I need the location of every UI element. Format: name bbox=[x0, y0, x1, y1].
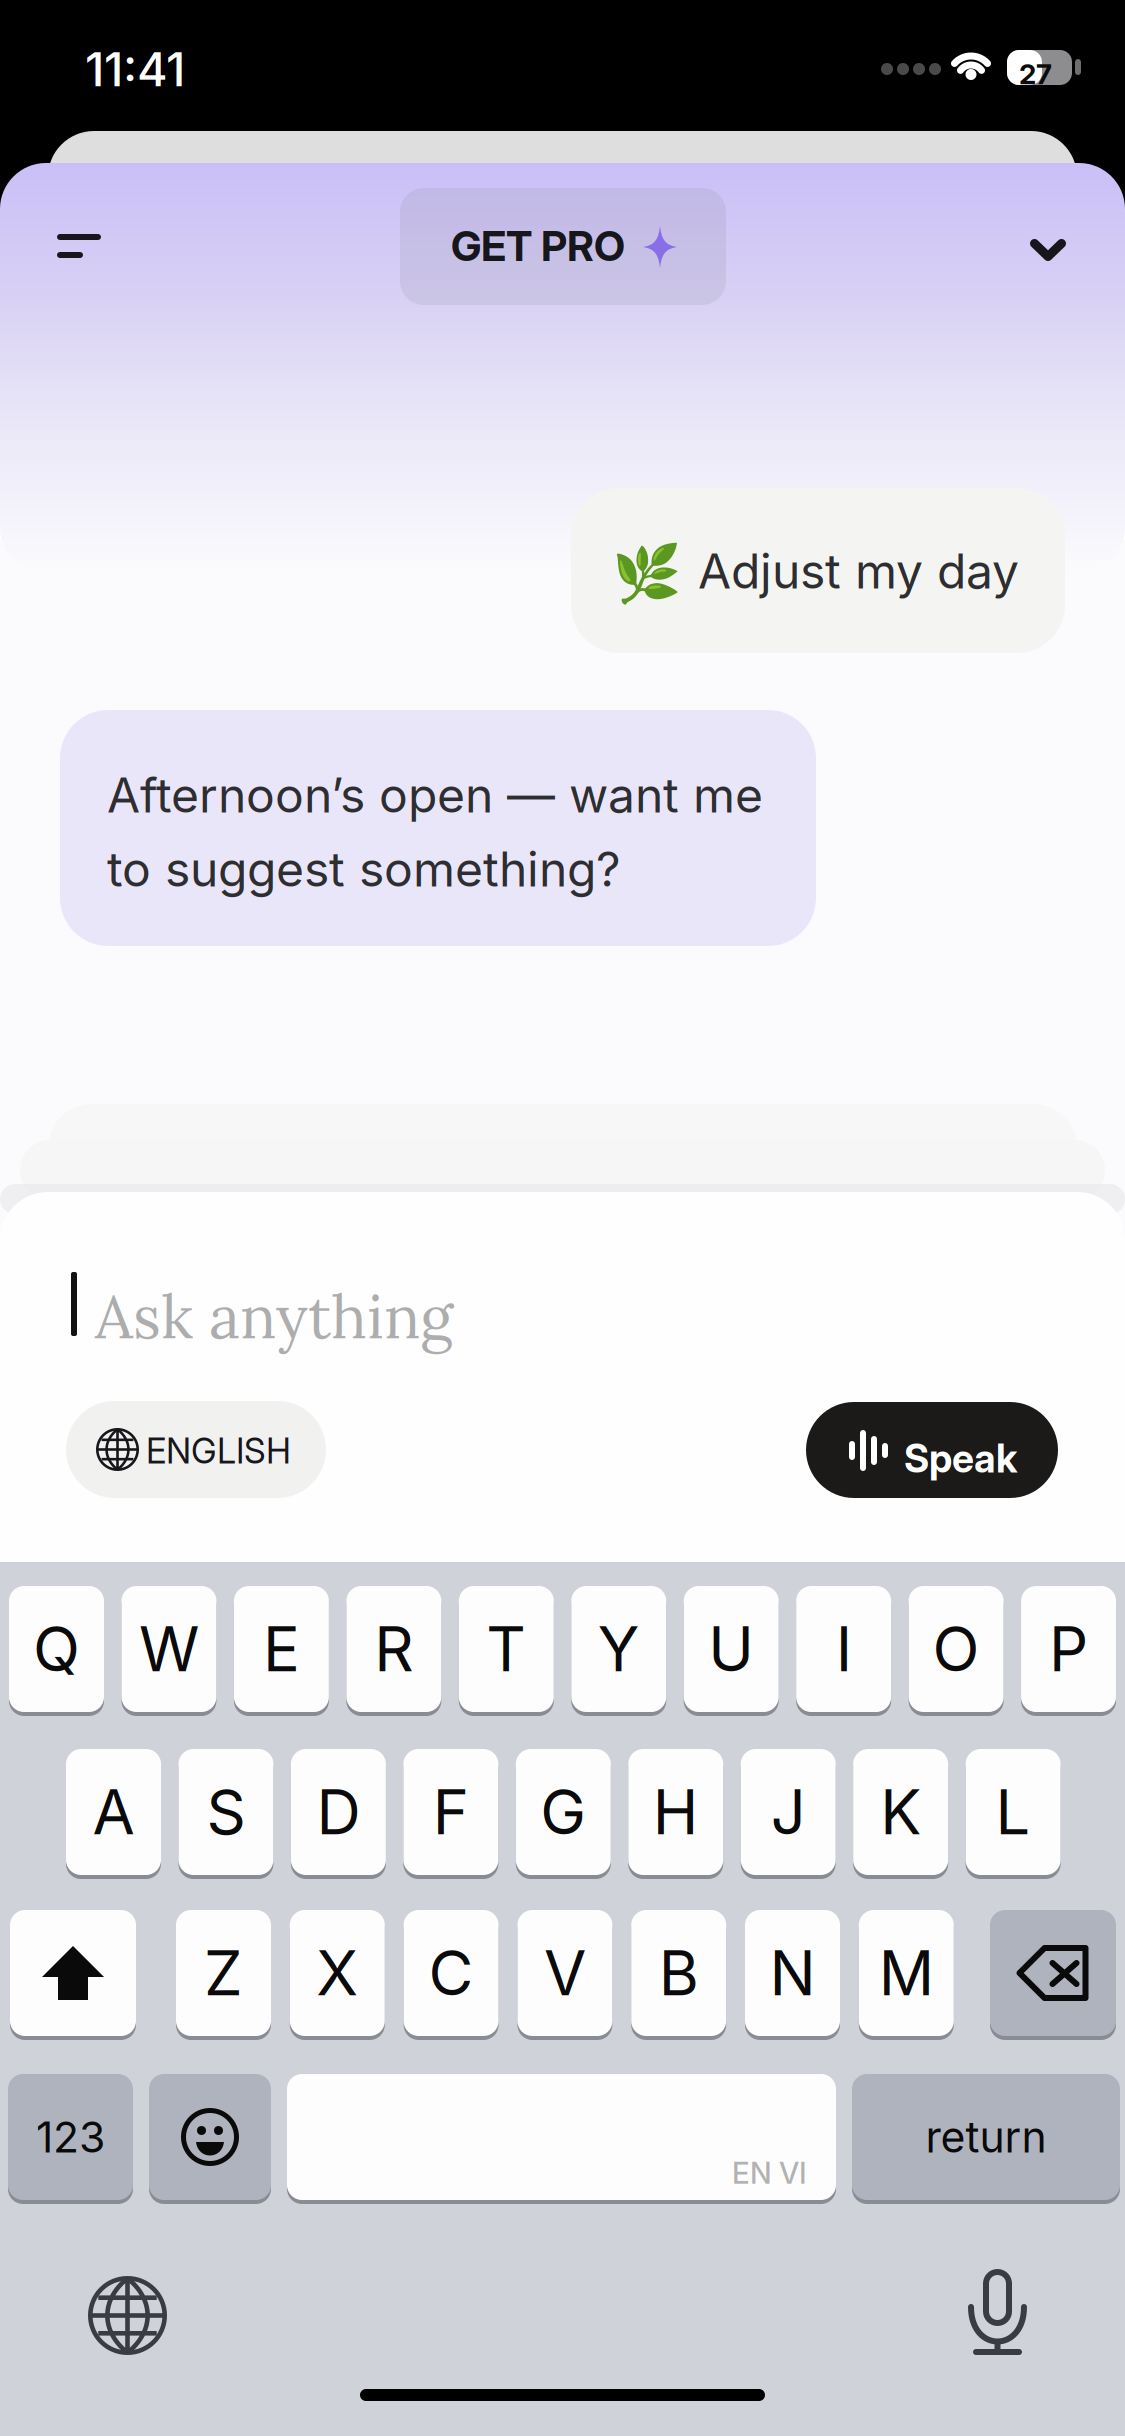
button[interactable]: J bbox=[741, 1747, 836, 1877]
button[interactable]: N bbox=[745, 1908, 840, 2038]
staticText: P bbox=[1049, 1612, 1088, 1686]
staticText: E bbox=[263, 1612, 300, 1686]
button[interactable]: Next keyboard bbox=[88, 2276, 167, 2355]
button[interactable]: Speak bbox=[806, 1402, 1058, 1498]
button[interactable]: return bbox=[852, 2072, 1120, 2202]
staticText: Y bbox=[598, 1612, 640, 1686]
button[interactable]: G bbox=[516, 1747, 611, 1877]
staticText: H bbox=[653, 1775, 699, 1849]
button[interactable]: Emoji bbox=[149, 2072, 271, 2202]
button[interactable]: D bbox=[291, 1747, 386, 1877]
button[interactable]: I bbox=[796, 1584, 891, 1714]
button[interactable]: P bbox=[1021, 1584, 1116, 1714]
staticText: V bbox=[544, 1936, 586, 2010]
staticText: L bbox=[996, 1775, 1031, 1849]
button[interactable]: Dictate bbox=[969, 2269, 1026, 2355]
button[interactable]: H bbox=[628, 1747, 723, 1877]
button[interactable]: F bbox=[403, 1747, 498, 1877]
staticText: T bbox=[486, 1612, 526, 1686]
staticText: ENGLISH bbox=[146, 1430, 291, 1472]
button[interactable]: W bbox=[121, 1584, 216, 1714]
button[interactable]: S bbox=[178, 1747, 273, 1877]
button[interactable]: X bbox=[290, 1908, 385, 2038]
staticText: J bbox=[771, 1775, 806, 1849]
button[interactable]: Collapse bbox=[1014, 218, 1080, 280]
button[interactable]: Q bbox=[9, 1584, 104, 1714]
staticText: S bbox=[206, 1775, 245, 1849]
staticText: N bbox=[769, 1936, 815, 2010]
staticText: 11:41 bbox=[85, 41, 185, 97]
staticText: Afternoon’s open — want me bbox=[107, 766, 763, 824]
staticText: O bbox=[933, 1612, 980, 1686]
button[interactable]: B bbox=[631, 1908, 726, 2038]
staticText: B bbox=[659, 1936, 699, 2010]
staticText: Adjust my day bbox=[698, 542, 1019, 600]
button[interactable]: ENGLISH bbox=[66, 1401, 326, 1498]
button[interactable]: Delete bbox=[990, 1908, 1116, 2038]
staticText: G bbox=[540, 1775, 586, 1849]
button[interactable]: E bbox=[234, 1584, 329, 1714]
staticText: C bbox=[429, 1936, 474, 2010]
button[interactable]: GET PRO bbox=[400, 188, 726, 305]
staticText: return bbox=[925, 2111, 1046, 2163]
button[interactable]: T bbox=[459, 1584, 554, 1714]
button[interactable]: O bbox=[909, 1584, 1004, 1714]
staticText: F bbox=[433, 1775, 469, 1849]
staticText: M bbox=[879, 1936, 934, 2010]
staticText: U bbox=[708, 1612, 754, 1686]
button[interactable]: A bbox=[66, 1747, 161, 1877]
button[interactable]: U bbox=[684, 1584, 779, 1714]
staticText: A bbox=[92, 1775, 134, 1849]
button[interactable]: Space bbox=[287, 2072, 836, 2202]
button[interactable]: K bbox=[853, 1747, 948, 1877]
staticText: D bbox=[316, 1775, 360, 1849]
button[interactable]: 123 bbox=[8, 2072, 133, 2202]
button[interactable]: Shift bbox=[10, 1908, 136, 2038]
button[interactable]: L bbox=[966, 1747, 1061, 1877]
button[interactable]: Y bbox=[571, 1584, 666, 1714]
staticText: Q bbox=[33, 1612, 80, 1686]
staticText: Speak bbox=[904, 1435, 1017, 1482]
staticText: 123 bbox=[36, 2111, 105, 2163]
staticText: GET PRO bbox=[451, 221, 625, 271]
staticText: I bbox=[836, 1612, 852, 1686]
staticText: to suggest something? bbox=[107, 840, 621, 898]
button[interactable]: Menu bbox=[39, 216, 120, 278]
staticText: R bbox=[374, 1612, 413, 1686]
staticText: EN VI bbox=[732, 2155, 807, 2191]
staticText: W bbox=[139, 1612, 199, 1686]
staticText: 27 bbox=[1019, 57, 1052, 91]
staticText: K bbox=[880, 1775, 921, 1849]
staticText: Z bbox=[204, 1936, 243, 2010]
button[interactable]: V bbox=[517, 1908, 612, 2038]
button[interactable]: R bbox=[346, 1584, 441, 1714]
button[interactable]: Z bbox=[176, 1908, 271, 2038]
staticText: Ask anything bbox=[95, 1278, 453, 1355]
staticText: 🌿 bbox=[612, 541, 682, 607]
button[interactable]: M bbox=[859, 1908, 954, 2038]
staticText: X bbox=[316, 1936, 358, 2010]
button[interactable]: C bbox=[404, 1908, 499, 2038]
